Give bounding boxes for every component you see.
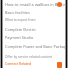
staticText: Basic facilities xyxy=(5,10,30,15)
button[interactable]: Profile xyxy=(57,2,62,7)
staticText: Complete Electric xyxy=(5,27,36,32)
staticText: What to expect from xyxy=(5,18,36,22)
staticText: Complete Power and Basic Packages xyxy=(5,44,68,49)
staticText: Offer by service related content xyxy=(5,55,53,59)
staticText: Payment Studio xyxy=(5,35,34,40)
staticText: Connect Related xyxy=(5,61,32,66)
button[interactable]: Add xyxy=(57,62,62,68)
staticText: How to install a wallbox in Berlin xyxy=(5,2,66,7)
